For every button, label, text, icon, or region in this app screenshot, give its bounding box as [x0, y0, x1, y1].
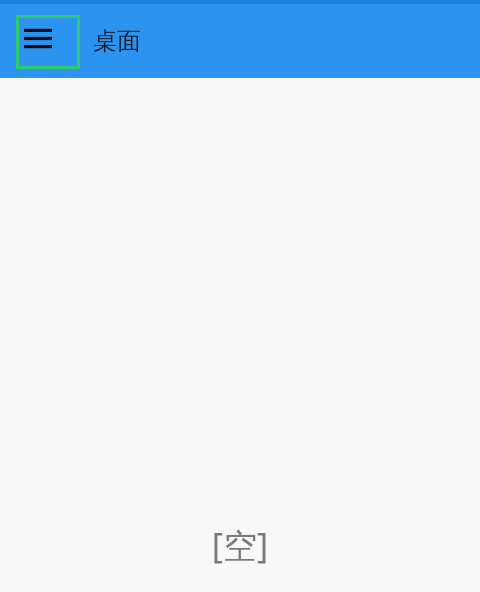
staticText: 桌面 [93, 26, 141, 56]
button[interactable]: 菜单 [16, 15, 80, 69]
staticText: [空] [0, 522, 480, 568]
